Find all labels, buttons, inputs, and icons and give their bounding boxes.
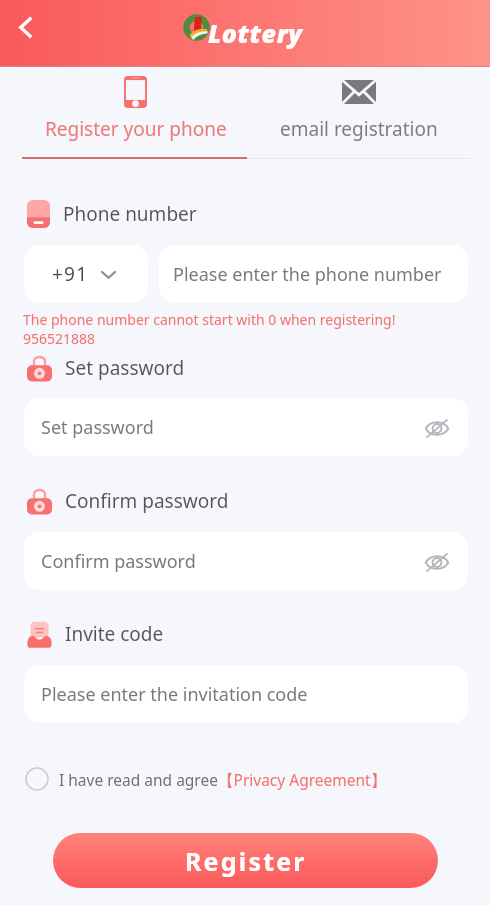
staticText: Lottery (208, 16, 303, 50)
button[interactable]: Register (53, 833, 438, 888)
staticText: Phone number (63, 201, 197, 227)
staticText: Set password (41, 415, 154, 440)
staticText: 【Privacy Agreement】 (218, 769, 387, 790)
button[interactable]: Back (5, 6, 47, 48)
button[interactable]: Register your phone (24, 66, 247, 159)
button[interactable]: +91 (24, 245, 148, 303)
button[interactable]: Please enter the invitation code (24, 665, 468, 723)
staticText: Register your phone (45, 116, 227, 142)
staticText: Register (185, 844, 307, 878)
staticText: 956521888 (23, 329, 96, 348)
staticText: Confirm password (65, 488, 229, 514)
button[interactable]: I have read and agree (24, 766, 50, 792)
staticText: Set password (65, 355, 185, 381)
button[interactable]: Show password (419, 409, 455, 445)
staticText: Confirm password (41, 549, 196, 574)
staticText: Invite code (65, 621, 164, 647)
button[interactable]: Please enter the phone number (159, 245, 468, 303)
staticText: Please enter the phone number (173, 262, 442, 287)
button[interactable]: 【Privacy Agreement】 (218, 769, 387, 790)
button[interactable]: Show password (419, 543, 455, 579)
button[interactable]: email registration (247, 66, 470, 159)
staticText: I have read and agree (59, 769, 218, 790)
staticText: The phone number cannot start with 0 whe… (23, 310, 396, 329)
staticText: +91 (52, 261, 89, 287)
staticText: Please enter the invitation code (41, 682, 308, 707)
staticText: email registration (280, 116, 438, 142)
button[interactable]: Confirm password (24, 532, 468, 590)
button[interactable]: Set password (24, 398, 468, 456)
